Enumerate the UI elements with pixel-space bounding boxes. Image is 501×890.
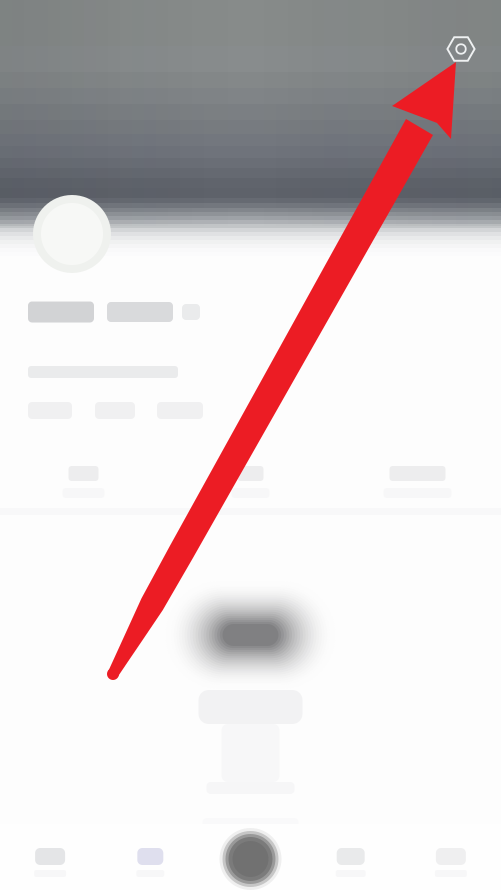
button[interactable]: Profile photo [28, 190, 116, 278]
button[interactable]: Discover [100, 824, 200, 890]
button[interactable]: Create [200, 824, 301, 890]
button[interactable]: Me [401, 824, 501, 890]
button[interactable]: Home [0, 824, 100, 890]
button[interactable]: Stat [334, 458, 501, 506]
button[interactable]: Messages [301, 824, 401, 890]
button[interactable]: Settings [434, 22, 488, 76]
button[interactable]: Stat [167, 458, 334, 506]
button[interactable]: Stat [0, 458, 167, 506]
